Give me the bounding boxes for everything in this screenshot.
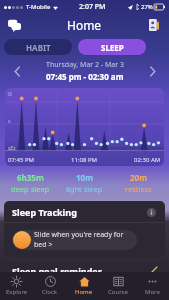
- staticText: z: [8, 118, 11, 125]
- button[interactable]: 20m: [111, 172, 165, 194]
- button[interactable]: Slide when you're ready for bed >: [12, 230, 137, 250]
- button[interactable]: 10m: [57, 172, 111, 194]
- staticText: Sleep Tracking: [12, 206, 77, 218]
- staticText: deep sleep: [11, 184, 50, 194]
- staticText: 11:08 PM: [71, 156, 97, 164]
- button[interactable]: Previous day: [8, 62, 26, 80]
- staticText: 6h35m: [17, 172, 44, 183]
- button[interactable]: Clock: [33, 272, 67, 300]
- button[interactable]: HABIT: [4, 39, 72, 55]
- staticText: Explore: [6, 288, 28, 296]
- staticText: 10m: [76, 172, 93, 183]
- staticText: 2:07 PM: [79, 2, 106, 12]
- staticText: 07:45 pm - 02:30 am: [46, 71, 124, 82]
- staticText: 02:30 AM: [134, 156, 161, 164]
- button[interactable]: Explore: [0, 272, 33, 300]
- staticText: SLEEP: [101, 42, 124, 53]
- staticText: More: [145, 288, 160, 296]
- button[interactable]: Profile: [145, 16, 163, 34]
- staticText: 27%: [141, 3, 153, 11]
- button[interactable]: Info: [145, 206, 157, 218]
- staticText: zZz: [8, 145, 16, 152]
- staticText: Sleep goal reminder: [12, 265, 102, 277]
- button[interactable]: 6h35m: [4, 172, 57, 194]
- staticText: Home: [67, 17, 102, 33]
- button[interactable]: SLEEP: [78, 39, 146, 55]
- staticText: Clock: [42, 288, 58, 296]
- button[interactable]: Home: [67, 272, 101, 300]
- button[interactable]: Next day: [143, 62, 161, 80]
- staticText: light sleep: [66, 184, 103, 194]
- staticText: ʘ: [8, 91, 12, 98]
- button[interactable]: Messages: [5, 16, 23, 34]
- staticText: Home: [75, 288, 93, 296]
- button[interactable]: ʘ: [5, 88, 164, 166]
- button[interactable]: Course: [101, 272, 135, 300]
- button[interactable]: More: [135, 272, 169, 300]
- button[interactable]: Sleep goal reminder: [4, 262, 165, 280]
- staticText: 07:45 PM: [8, 156, 34, 164]
- staticText: Slide when you're ready for bed >: [34, 230, 137, 250]
- staticText: restless: [125, 184, 152, 194]
- staticText: Thursday, Mar 2 - Mar 3: [46, 60, 124, 70]
- staticText: HABIT: [26, 42, 51, 53]
- staticText: T-Mobile: [26, 3, 51, 11]
- staticText: 20m: [130, 172, 147, 183]
- staticText: Course: [108, 288, 128, 296]
